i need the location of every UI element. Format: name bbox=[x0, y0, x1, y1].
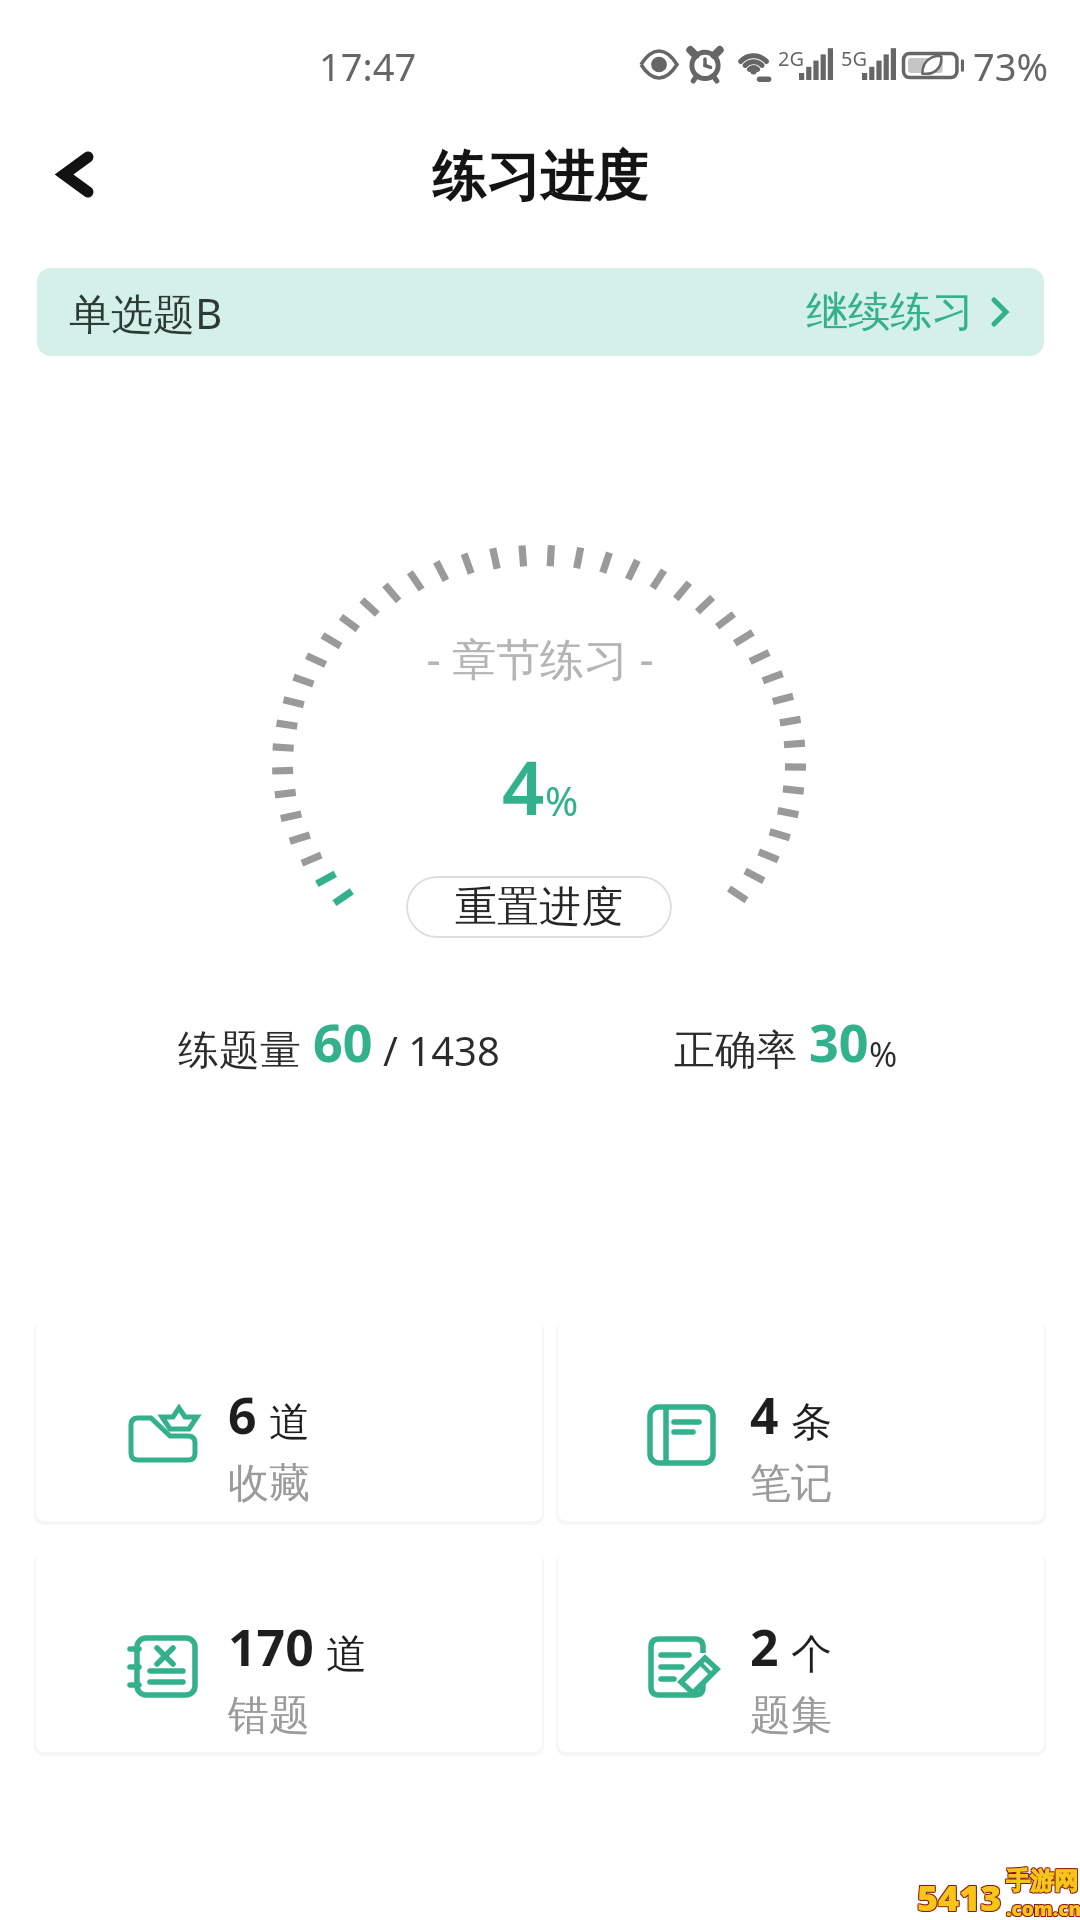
staticText: 5413 bbox=[918, 1874, 1003, 1920]
staticText: 73% bbox=[973, 40, 1049, 92]
staticText: 5413 bbox=[916, 1874, 1001, 1920]
staticText: 单选题B bbox=[69, 284, 223, 341]
staticText: 5413 bbox=[917, 1874, 1002, 1920]
staticText: 5G bbox=[841, 45, 867, 72]
staticText: 题集 bbox=[750, 1690, 832, 1742]
staticText: .com.cn bbox=[1005, 1897, 1080, 1920]
staticText: 5413 bbox=[917, 1873, 1002, 1920]
staticText: 条 bbox=[791, 1397, 832, 1449]
button[interactable]: Back bbox=[32, 130, 120, 218]
staticText: 170 bbox=[228, 1613, 314, 1681]
staticText: .com.cn bbox=[1006, 1897, 1080, 1920]
staticText: 5413 bbox=[917, 1872, 1002, 1920]
staticText: .com.cn bbox=[1007, 1896, 1080, 1920]
staticText: .com.cn bbox=[1007, 1897, 1080, 1920]
staticText: 17:47 bbox=[319, 40, 417, 92]
staticText: 手游网 bbox=[1007, 1867, 1079, 1897]
staticText: 正确率 bbox=[674, 1025, 797, 1077]
staticText: .com.cn bbox=[1007, 1895, 1080, 1920]
button[interactable]: 重置进度 bbox=[406, 876, 672, 938]
staticText: .com.cn bbox=[1005, 1896, 1080, 1920]
staticText: 手游网 bbox=[1007, 1866, 1079, 1896]
staticText: 个 bbox=[791, 1629, 832, 1681]
staticText: .com.cn bbox=[1005, 1895, 1080, 1920]
staticText: 手游网 bbox=[1007, 1865, 1079, 1895]
staticText: 练题量 bbox=[178, 1025, 301, 1077]
staticText: .com.cn bbox=[1006, 1895, 1080, 1920]
staticText: 6 bbox=[228, 1381, 257, 1449]
staticText: 手游网 bbox=[1006, 1865, 1078, 1895]
staticText: 道 bbox=[269, 1397, 310, 1449]
staticText: 手游网 bbox=[1005, 1865, 1077, 1895]
staticText: 5413 bbox=[918, 1872, 1003, 1920]
staticText: 笔记 bbox=[750, 1458, 832, 1510]
staticText: 手游网 bbox=[1005, 1866, 1077, 1896]
staticText: - 章节练习 - bbox=[426, 628, 654, 688]
button[interactable]: 4 bbox=[558, 1318, 1044, 1521]
staticText: 手游网 bbox=[1005, 1867, 1077, 1897]
button[interactable]: 6 bbox=[36, 1318, 542, 1521]
staticText: 2 bbox=[750, 1613, 779, 1681]
staticText: 收藏 bbox=[228, 1458, 310, 1510]
staticText: 5413 bbox=[916, 1873, 1001, 1920]
staticText: 5413 bbox=[916, 1872, 1001, 1920]
staticText: 30 bbox=[809, 1006, 869, 1077]
staticText: 手游网 bbox=[1006, 1866, 1078, 1896]
staticText: % bbox=[545, 773, 579, 827]
staticText: 重置进度 bbox=[455, 881, 623, 934]
staticText: 4 bbox=[502, 736, 545, 837]
staticText: 4 bbox=[750, 1381, 779, 1449]
staticText: 手游网 bbox=[1006, 1867, 1078, 1897]
staticText: 错题 bbox=[228, 1690, 310, 1742]
staticText: 5413 bbox=[918, 1873, 1003, 1920]
staticText: 60 bbox=[313, 1006, 373, 1077]
button[interactable]: 单选题B bbox=[37, 268, 1044, 356]
button[interactable]: 2 bbox=[558, 1550, 1044, 1752]
staticText: 道 bbox=[326, 1629, 367, 1681]
staticText: .com.cn bbox=[1006, 1896, 1080, 1920]
staticText: 练习进度 bbox=[432, 143, 648, 211]
staticText: / 1438 bbox=[383, 1023, 500, 1077]
staticText: 继续练习 bbox=[806, 286, 974, 339]
staticText: 2G bbox=[778, 45, 804, 72]
staticText: % bbox=[869, 1031, 898, 1077]
button[interactable]: 170 bbox=[36, 1550, 542, 1752]
